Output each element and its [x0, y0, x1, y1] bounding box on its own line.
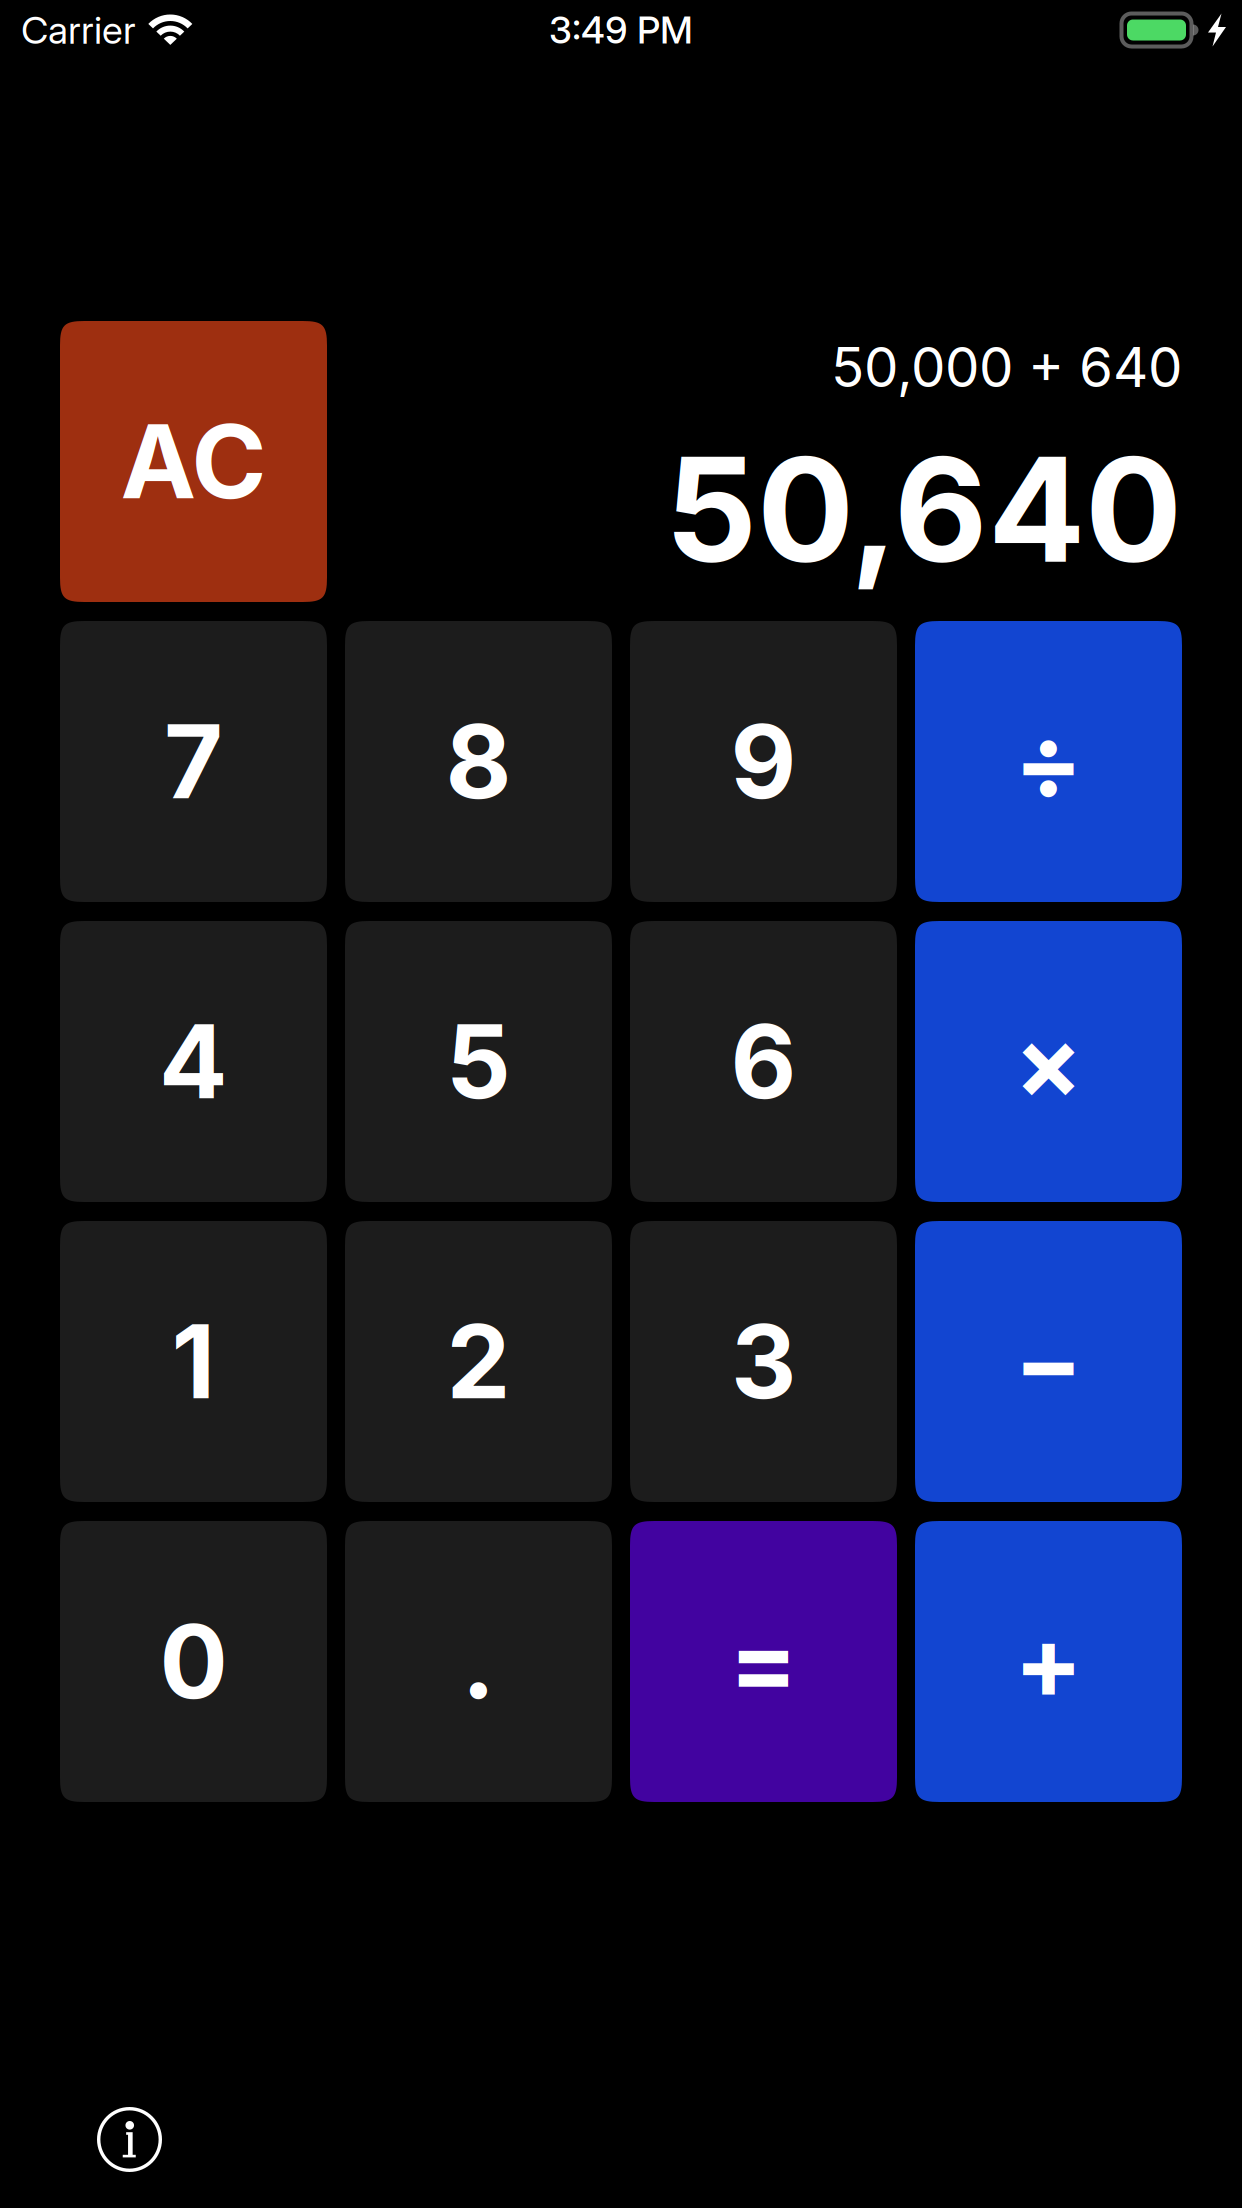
- button[interactable]: 0: [60, 1521, 327, 1802]
- staticText: 9: [730, 700, 796, 823]
- button[interactable]: 4: [60, 921, 327, 1202]
- staticText: ÷: [1014, 700, 1083, 823]
- staticText: AC: [120, 400, 266, 523]
- staticText: 3: [731, 1300, 796, 1423]
- button[interactable]: 7: [60, 621, 327, 902]
- staticText: 50,000 + 640: [831, 334, 1182, 400]
- button[interactable]: ×: [915, 921, 1182, 1202]
- staticText: 8: [445, 700, 511, 823]
- staticText: 1: [171, 1300, 215, 1423]
- button[interactable]: −: [915, 1221, 1182, 1502]
- staticText: 3:49 PM: [549, 7, 693, 53]
- staticText: +: [1014, 1600, 1083, 1723]
- staticText: 2: [446, 1300, 510, 1423]
- staticText: .: [461, 1600, 495, 1723]
- staticText: 0: [159, 1600, 227, 1723]
- button[interactable]: 2: [345, 1221, 612, 1502]
- staticText: 7: [164, 700, 223, 823]
- button[interactable]: Info: [97, 2107, 162, 2172]
- button[interactable]: AC: [60, 321, 327, 602]
- staticText: −: [1014, 1300, 1083, 1423]
- button[interactable]: 9: [630, 621, 897, 902]
- button[interactable]: =: [630, 1521, 897, 1802]
- button[interactable]: +: [915, 1521, 1182, 1802]
- staticText: 6: [730, 1000, 796, 1123]
- button[interactable]: 3: [630, 1221, 897, 1502]
- button[interactable]: 1: [60, 1221, 327, 1502]
- staticText: Carrier: [21, 7, 136, 53]
- button[interactable]: ÷: [915, 621, 1182, 902]
- button[interactable]: 5: [345, 921, 612, 1202]
- staticText: 4: [159, 1000, 228, 1123]
- staticText: 50,640: [665, 422, 1182, 596]
- staticText: ×: [1014, 1000, 1083, 1123]
- staticText: 5: [446, 1000, 511, 1123]
- button[interactable]: .: [345, 1521, 612, 1802]
- button[interactable]: 8: [345, 621, 612, 902]
- button[interactable]: 6: [630, 921, 897, 1202]
- staticText: =: [729, 1600, 798, 1723]
